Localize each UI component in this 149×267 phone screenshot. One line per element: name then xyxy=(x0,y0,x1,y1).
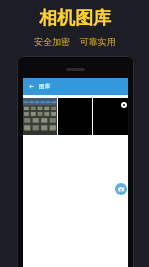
other: Back xyxy=(29,84,34,89)
button[interactable]: Photo xyxy=(23,98,57,135)
staticText: 安全加密 可靠实用 xyxy=(34,35,116,47)
button[interactable]: Camera xyxy=(115,183,127,195)
staticText: 图库 xyxy=(39,83,50,90)
staticText: 相机图库 xyxy=(39,7,111,30)
button[interactable]: Back xyxy=(23,78,128,95)
button[interactable] xyxy=(93,98,128,135)
